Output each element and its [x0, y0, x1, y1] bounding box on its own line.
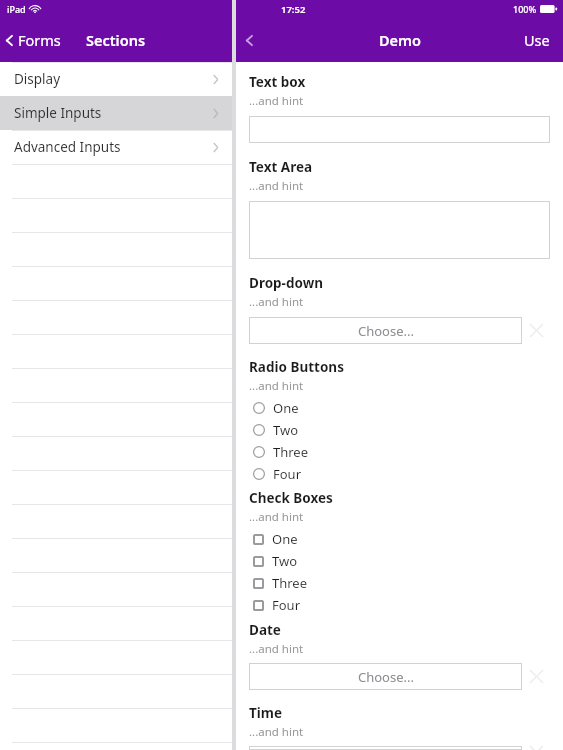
staticText: One — [272, 530, 298, 548]
staticText: iPad — [7, 3, 26, 15]
staticText: Sections — [86, 30, 146, 50]
staticText: Four — [272, 596, 301, 614]
button[interactable]: Simple Inputs — [0, 96, 232, 130]
staticText: Simple Inputs — [14, 104, 102, 122]
staticText: ...and hint — [249, 724, 304, 740]
button[interactable]: Back — [236, 27, 265, 54]
button[interactable]: Three — [249, 572, 550, 594]
staticText: Text Area — [249, 158, 313, 176]
button[interactable]: Clear — [522, 663, 550, 690]
staticText: Three — [273, 443, 309, 461]
staticText: One — [273, 399, 299, 417]
staticText: Date — [249, 621, 281, 639]
button[interactable]: Clear — [522, 746, 550, 750]
button[interactable]: Choose... — [249, 663, 522, 690]
staticText: ...and hint — [249, 294, 304, 310]
button[interactable]: Four — [249, 463, 550, 485]
staticText: Two — [273, 421, 299, 439]
staticText: Advanced Inputs — [14, 138, 121, 156]
staticText: Choose... — [358, 322, 414, 340]
button[interactable]: One — [249, 528, 550, 550]
button[interactable] — [249, 201, 550, 259]
staticText: 100% — [513, 3, 537, 15]
button[interactable]: One — [249, 397, 550, 419]
staticText: Radio Buttons — [249, 358, 344, 376]
staticText: 17:52 — [281, 3, 306, 16]
staticText: Time — [249, 704, 283, 722]
button[interactable]: Three — [249, 441, 550, 463]
staticText: ...and hint — [249, 641, 304, 657]
button[interactable]: Two — [249, 550, 550, 572]
button[interactable]: Use — [511, 21, 563, 59]
staticText: Use — [524, 30, 550, 50]
button[interactable] — [249, 116, 550, 143]
staticText: Two — [272, 552, 298, 570]
staticText: Demo — [379, 30, 421, 50]
staticText: Three — [272, 574, 308, 592]
staticText: Display — [14, 70, 61, 88]
staticText: ...and hint — [249, 378, 304, 394]
staticText: Drop-down — [249, 274, 323, 292]
button[interactable]: Display — [0, 62, 232, 96]
button[interactable]: Clear — [522, 317, 550, 344]
staticText: ...and hint — [249, 178, 304, 194]
button[interactable]: Forms — [0, 24, 69, 56]
button[interactable]: Four — [249, 594, 550, 616]
staticText: Forms — [18, 30, 61, 50]
staticText: ...and hint — [249, 509, 304, 525]
staticText: Four — [273, 465, 302, 483]
staticText: Check Boxes — [249, 489, 333, 507]
staticText: ...and hint — [249, 93, 304, 109]
button[interactable]: Choose... — [249, 317, 522, 344]
button[interactable]: Choose... — [249, 746, 522, 750]
staticText: Text box — [249, 73, 306, 91]
button[interactable]: Two — [249, 419, 550, 441]
staticText: Choose... — [358, 668, 414, 686]
button[interactable]: Advanced Inputs — [0, 130, 232, 164]
staticText: Choose... — [358, 746, 414, 750]
